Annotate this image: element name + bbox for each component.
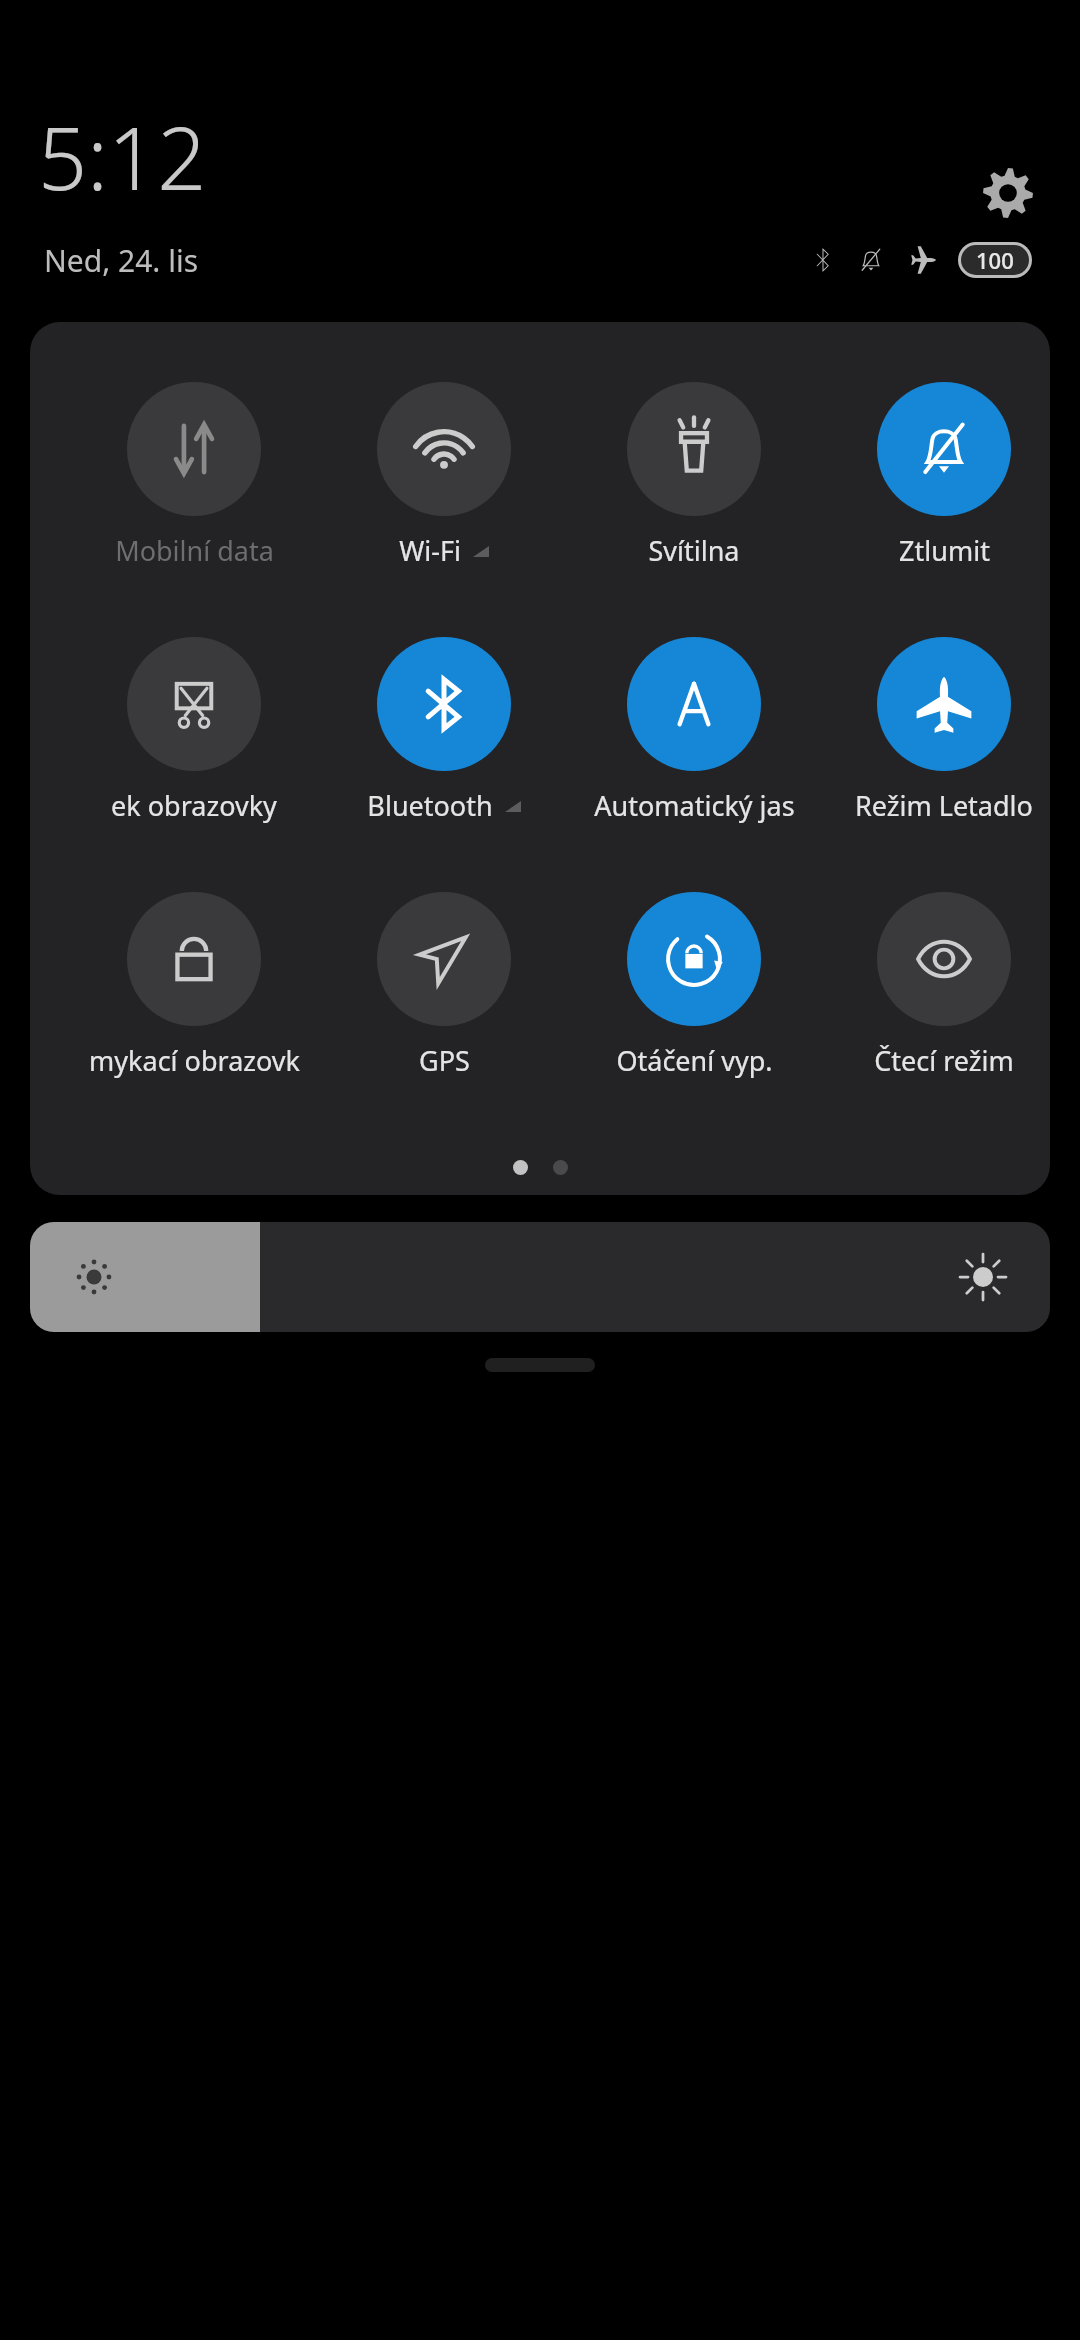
staticText: Režim Letadlo — [855, 787, 1033, 824]
staticText: Ztlumit — [899, 532, 990, 569]
staticText: Ned, 24. lis — [44, 240, 199, 281]
staticText: Čtecí režim — [874, 1042, 1014, 1079]
button[interactable]: mykací obrazovk — [69, 892, 319, 1092]
button[interactable]: Settings — [975, 160, 1041, 226]
staticText: Bluetooth — [367, 787, 493, 824]
button[interactable]: Otáčení vyp. — [569, 892, 819, 1092]
button[interactable]: Režim Letadlo — [819, 637, 1050, 837]
staticText: Automatický jas — [594, 787, 795, 824]
staticText: Wi-Fi — [399, 532, 461, 569]
staticText: 5:12 — [38, 98, 207, 215]
button[interactable]: Ztlumit — [819, 382, 1050, 582]
button[interactable]: Mobilní data — [69, 382, 319, 582]
staticText: Svítilna — [648, 532, 740, 569]
button[interactable]: Automatický jas — [569, 637, 819, 837]
button[interactable]: Svítilna — [569, 382, 819, 582]
staticText: mykací obrazovk — [89, 1042, 300, 1079]
staticText: Mobilní data — [115, 532, 274, 569]
button[interactable]: Bluetooth — [319, 637, 569, 837]
staticText: 100 — [976, 245, 1014, 275]
button[interactable]: Brightness — [30, 1222, 1050, 1332]
staticText: GPS — [419, 1042, 470, 1079]
staticText: ek obrazovky — [111, 787, 277, 824]
button[interactable]: GPS — [319, 892, 569, 1092]
staticText: Otáčení vyp. — [616, 1042, 773, 1079]
button[interactable]: Wi-Fi — [319, 382, 569, 582]
button[interactable]: Čtecí režim — [819, 892, 1050, 1092]
button[interactable]: ek obrazovky — [69, 637, 319, 837]
